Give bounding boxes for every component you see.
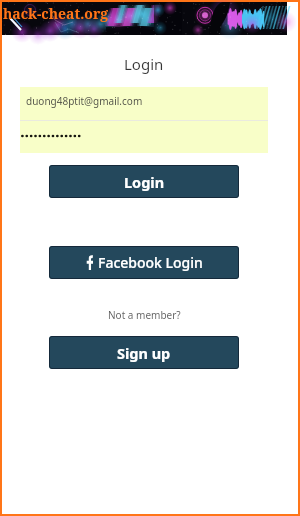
button[interactable]: Facebook Login bbox=[49, 246, 239, 279]
staticText: Login bbox=[124, 172, 165, 192]
staticText: hack-cheat.org bbox=[3, 4, 109, 23]
staticText: duong48ptit@gmail.com bbox=[26, 94, 143, 108]
button[interactable] bbox=[20, 121, 268, 153]
staticText: Facebook Login bbox=[98, 253, 203, 272]
staticText: Login bbox=[124, 54, 164, 74]
button[interactable]: Login bbox=[49, 165, 239, 198]
staticText: Sign up bbox=[117, 343, 171, 363]
button[interactable]: duong48ptit@gmail.com bbox=[20, 87, 268, 120]
staticText: Not a member? bbox=[108, 308, 181, 322]
button[interactable]: Sign up bbox=[49, 336, 239, 369]
